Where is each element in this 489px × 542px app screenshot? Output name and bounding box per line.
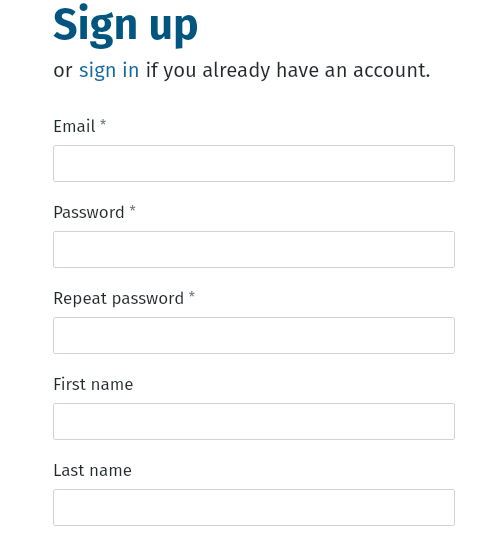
button[interactable]: First name bbox=[53, 403, 455, 440]
staticText: Password * bbox=[53, 202, 136, 222]
button[interactable]: Password bbox=[53, 231, 455, 268]
staticText: Email * bbox=[53, 116, 107, 136]
button[interactable]: Repeat password bbox=[53, 317, 455, 354]
staticText: Repeat password * bbox=[53, 288, 195, 308]
staticText: or bbox=[53, 58, 79, 82]
button[interactable]: sign in bbox=[79, 58, 140, 82]
staticText: Last name bbox=[53, 460, 132, 480]
button[interactable]: Email bbox=[53, 145, 455, 182]
staticText: Sign up bbox=[53, 0, 199, 51]
button[interactable]: Last name bbox=[53, 489, 455, 526]
staticText: if you already have an account. bbox=[140, 58, 431, 82]
staticText: First name bbox=[53, 374, 134, 394]
